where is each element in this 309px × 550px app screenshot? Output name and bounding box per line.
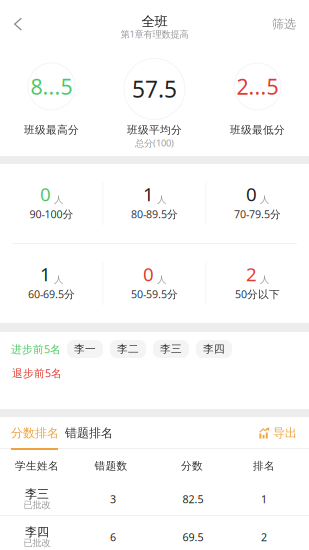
button[interactable]: 李一 [67,340,103,358]
staticText: 82.5 [182,492,203,506]
staticText: 3 [110,492,116,506]
staticText: 80-89.5分 [131,207,178,221]
staticText: 班级最低分 [230,123,285,136]
staticText: 1 [261,492,267,506]
staticText: 50分以下 [235,287,280,301]
staticText: 2...5 [236,72,278,101]
button[interactable]: 李二 [110,340,146,358]
staticText: 李四 [203,342,225,355]
staticText: 69.5 [182,530,203,544]
staticText: 退步前5名 [12,366,62,380]
staticText: 50-59.5分 [131,287,178,301]
staticText: 6 [110,530,116,544]
button[interactable]: 错题排名 [65,418,113,448]
button[interactable]: 导出 [259,418,297,448]
staticText: 总分(100) [135,137,174,149]
staticText: 70-79.5分 [234,207,281,221]
staticText: 分数 [181,459,203,472]
button[interactable]: Back [0,0,36,48]
button[interactable]: 李三 [0,478,309,516]
button[interactable]: 李四 [0,516,309,550]
staticText: 人 [260,194,269,205]
staticText: 全班 [141,13,167,30]
staticText: 李三 [25,487,49,501]
staticText: 已批改 [23,537,50,549]
staticText: 第1章有理数提高 [120,28,188,40]
staticText: 李二 [117,342,139,355]
staticText: 人 [260,274,269,285]
staticText: 李三 [160,342,182,355]
staticText: 学生姓名 [15,459,59,472]
staticText: 0 [246,182,257,206]
staticText: 人 [157,274,166,285]
staticText: 错题数 [94,459,127,472]
button[interactable]: 李三 [153,340,189,358]
staticText: 班级最高分 [24,123,79,136]
button[interactable]: 李四 [196,340,232,358]
staticText: 8...5 [30,72,72,101]
button[interactable]: 分数排名 [11,418,59,448]
staticText: 1 [143,182,154,206]
staticText: 已批改 [23,499,50,511]
staticText: 分数排名 [11,426,59,440]
staticText: 李四 [25,525,49,539]
staticText: 导出 [273,426,297,440]
staticText: 班级平均分 [127,123,182,136]
staticText: 0 [40,182,51,206]
staticText: 进步前5名 [11,342,61,356]
staticText: 0 [143,262,154,286]
staticText: 人 [157,194,166,205]
button[interactable]: 筛选 [259,0,309,48]
staticText: 1 [40,262,51,286]
staticText: 90-100分 [29,207,73,221]
staticText: 2 [261,530,267,544]
staticText: 57.5 [132,74,177,104]
staticText: 错题排名 [65,426,113,440]
staticText: 李一 [74,342,96,355]
staticText: 2 [246,262,257,286]
staticText: 60-69.5分 [28,287,75,301]
staticText: 排名 [253,459,275,472]
staticText: 人 [54,194,63,205]
staticText: 筛选 [272,17,296,31]
staticText: 人 [54,274,63,285]
